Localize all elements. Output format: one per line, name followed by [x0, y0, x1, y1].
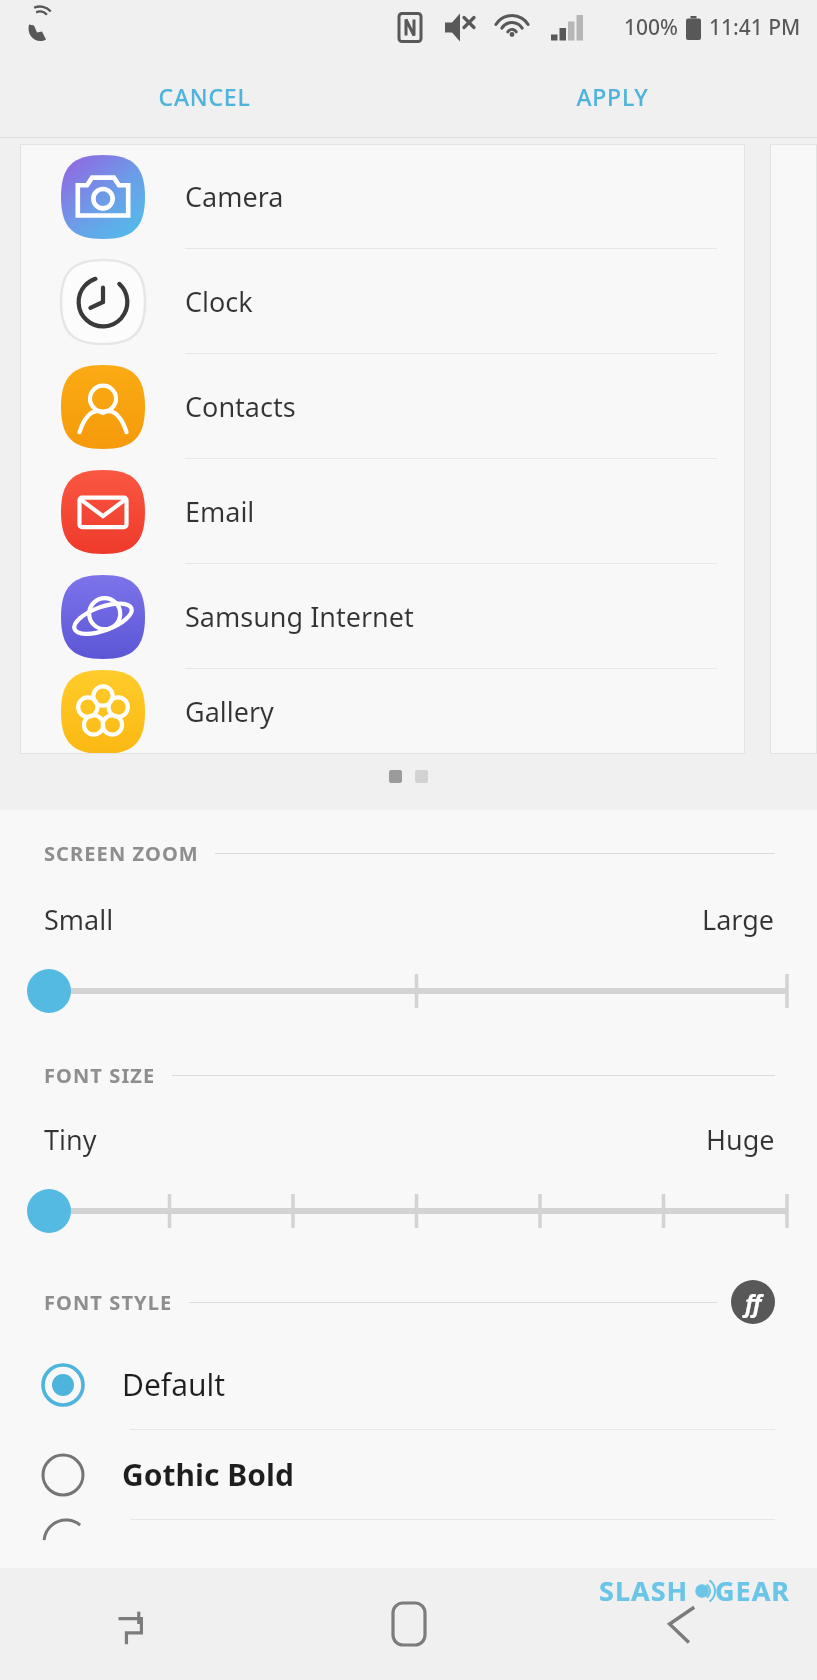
staticText: Camera	[185, 178, 284, 215]
staticText: ff	[745, 1287, 762, 1318]
button[interactable]: Camera	[20, 144, 745, 249]
staticText: 11:41 PM	[709, 13, 801, 42]
staticText: FONT SIZE	[44, 1062, 156, 1089]
staticText: Small	[44, 901, 114, 938]
button[interactable]: Samsung Internet	[20, 564, 745, 669]
staticText: SLASH	[599, 1572, 689, 1609]
staticText: Contacts	[185, 388, 296, 425]
staticText: Samsung Internet	[185, 598, 414, 635]
button[interactable]: Gallery	[20, 669, 745, 754]
button[interactable]: Home	[273, 1568, 545, 1680]
button[interactable]: Contacts	[20, 354, 745, 459]
staticText: 100%	[624, 13, 678, 42]
button[interactable]: Font size slider	[26, 1184, 789, 1238]
button[interactable]: Screen zoom slider	[26, 964, 789, 1018]
staticText: Gothic Bold	[122, 1454, 294, 1495]
staticText: Tiny	[44, 1121, 97, 1158]
staticText: Large	[702, 901, 775, 938]
staticText: Gallery	[185, 693, 274, 730]
staticText: FONT STYLE	[44, 1289, 173, 1316]
staticText: Clock	[185, 283, 253, 320]
button[interactable]: Recents	[0, 1568, 273, 1680]
button[interactable]: Email	[20, 459, 745, 564]
staticText: SCREEN ZOOM	[44, 840, 199, 867]
button[interactable]: APPLY	[408, 55, 817, 137]
button[interactable]: Clock	[20, 249, 745, 354]
button[interactable]: Default	[0, 1340, 817, 1430]
staticText: Default	[122, 1364, 226, 1405]
button[interactable]: Download fonts	[731, 1280, 775, 1324]
staticText: APPLY	[576, 81, 649, 112]
button[interactable]: Gothic Bold	[0, 1430, 817, 1520]
staticText: Huge	[706, 1121, 775, 1158]
button[interactable]: Back	[545, 1568, 817, 1680]
staticText: Email	[185, 493, 255, 530]
staticText: CANCEL	[158, 81, 251, 112]
staticText: GEAR	[715, 1572, 791, 1609]
button[interactable]: CANCEL	[0, 55, 408, 137]
